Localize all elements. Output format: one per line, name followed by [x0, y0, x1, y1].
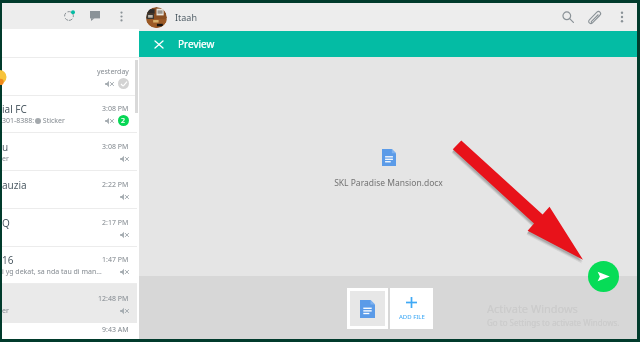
staticText: ADD FILE	[399, 313, 425, 321]
staticText: Activate Windows	[487, 301, 578, 316]
staticText: 3:08 PM	[102, 142, 129, 152]
staticText: Preview	[178, 37, 215, 51]
staticText: 3:08 PM	[102, 104, 129, 114]
staticText: 2:17 PM	[102, 218, 129, 228]
button[interactable]: yesterday	[2, 58, 137, 96]
button[interactable]: auzia	[2, 171, 137, 209]
staticText: SKL Paradise Mansion.docx	[334, 177, 443, 189]
staticText: auzia	[2, 178, 27, 191]
button[interactable]: ADD FILE	[390, 288, 433, 329]
staticText: i yg dekat, sa nda tau di mana ru...	[2, 267, 102, 277]
staticText: yesterday	[97, 67, 129, 77]
button[interactable]: Status	[60, 7, 78, 25]
staticText: 1:47 PM	[102, 255, 129, 265]
staticText: Sticker	[41, 116, 65, 126]
staticText: 12:48 PM	[98, 294, 129, 304]
button[interactable]: er	[2, 284, 137, 323]
button[interactable]: Send	[588, 261, 619, 292]
button[interactable]: Q	[2, 209, 137, 247]
staticText: 9:43 AM	[102, 325, 129, 335]
button[interactable]: New chat	[86, 7, 104, 25]
staticText: 2	[121, 116, 126, 126]
button[interactable]: 9:43 AM	[2, 323, 137, 339]
button[interactable]: Menu	[112, 7, 130, 25]
button[interactable]: Search	[557, 6, 579, 28]
staticText: Go to Settings to activate Windows.	[487, 317, 620, 328]
staticText: 16	[2, 253, 14, 266]
button[interactable]: ial FC	[2, 96, 137, 133]
staticText: er	[2, 154, 9, 164]
button[interactable]: Close preview	[149, 35, 168, 54]
staticText: Itaah	[175, 11, 197, 23]
button[interactable]: Selected file	[350, 291, 385, 326]
staticText: 301-8388:	[2, 116, 35, 126]
button[interactable]: Profile photo	[146, 7, 167, 28]
button[interactable]: 16	[2, 247, 137, 284]
staticText: Q	[2, 216, 10, 229]
button[interactable]: Attach	[583, 6, 605, 28]
staticText: er	[2, 306, 9, 316]
button[interactable]: u	[2, 133, 137, 171]
button[interactable]: More options	[611, 6, 633, 28]
staticText: u	[2, 140, 9, 153]
staticText: 2:22 PM	[102, 180, 129, 190]
staticText: ial FC	[2, 102, 27, 115]
